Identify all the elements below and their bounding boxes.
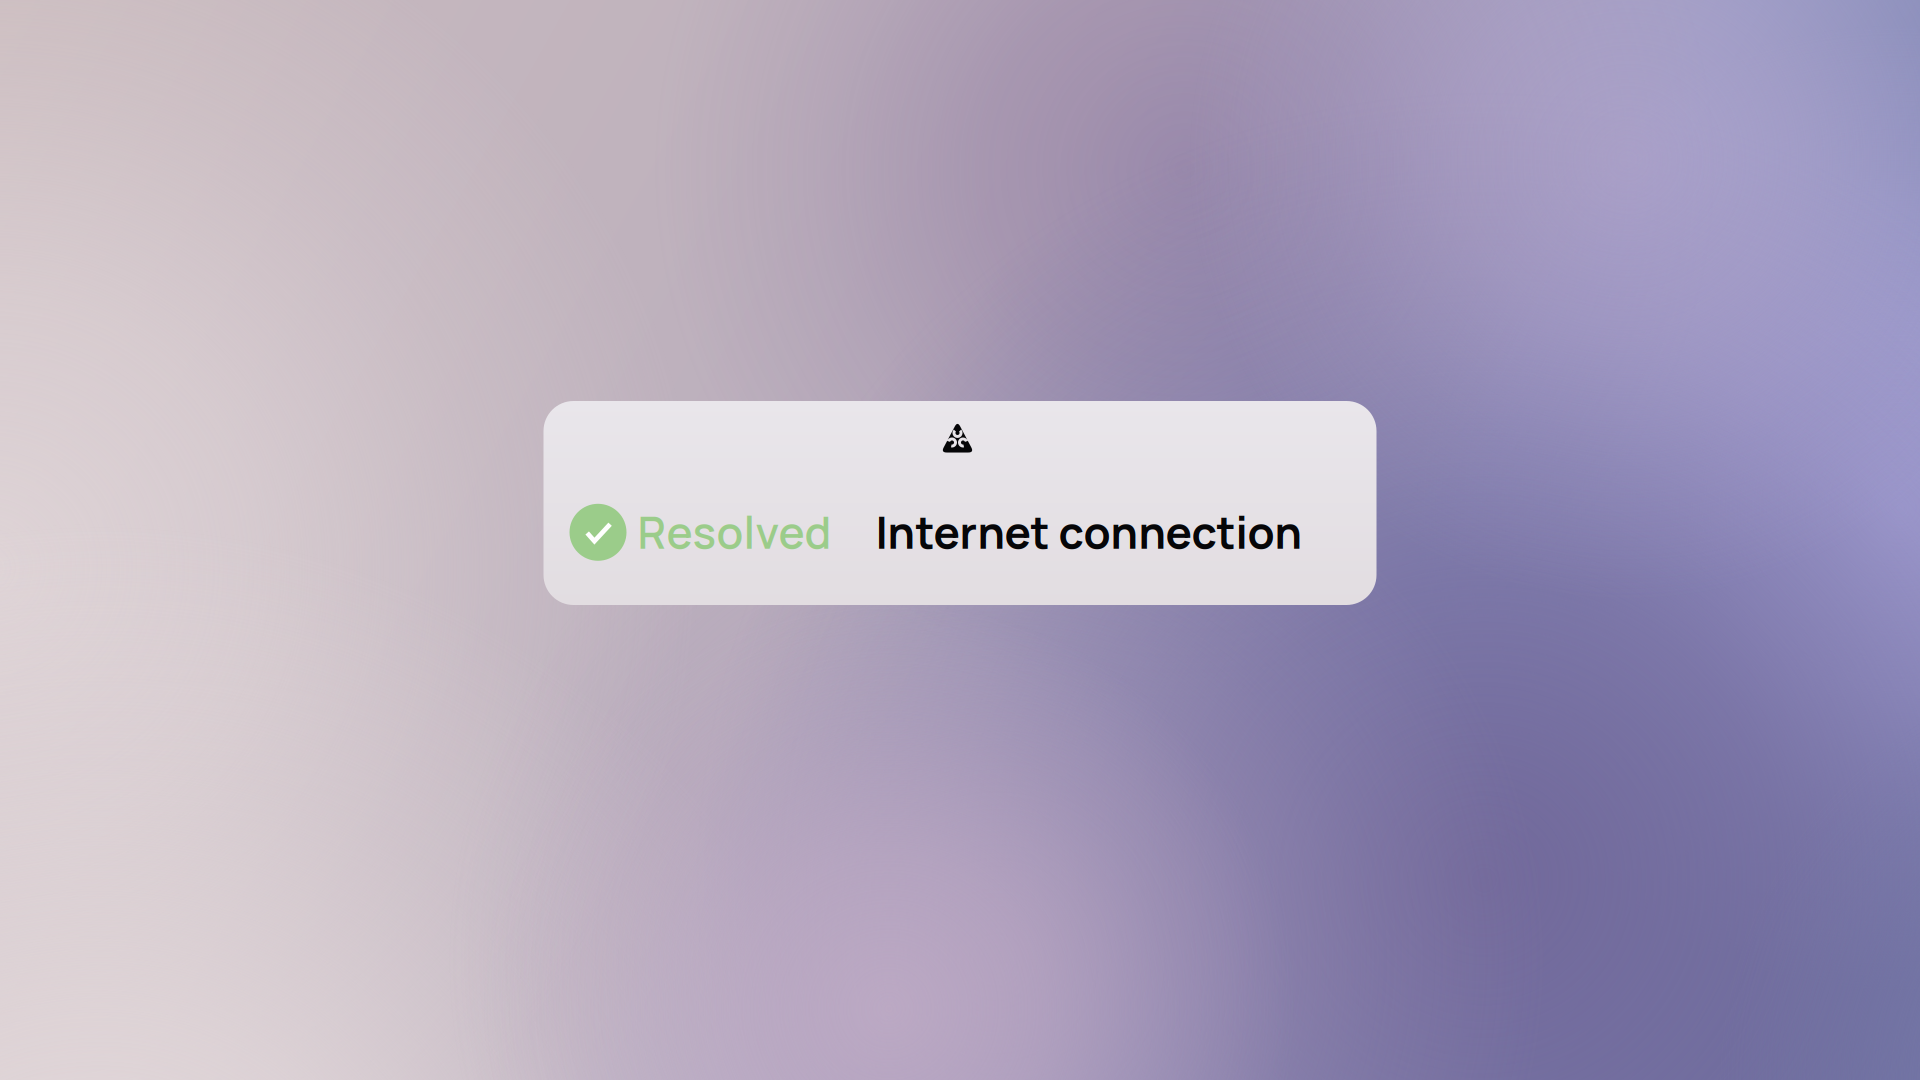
staticText: Internet connection xyxy=(875,502,1302,562)
staticText: Resolved xyxy=(637,502,831,562)
button[interactable]: Resolved xyxy=(543,401,1376,605)
